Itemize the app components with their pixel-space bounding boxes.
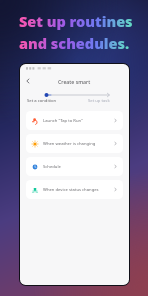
staticText: Launch "Tap to Run" (43, 118, 83, 124)
button[interactable]: Launch "Tap to Run" (26, 111, 123, 130)
staticText: Set a condition (27, 98, 57, 104)
staticText: and schedules. (19, 33, 130, 53)
staticText: Set up task (88, 98, 110, 104)
staticText: Schedule (43, 164, 61, 170)
staticText: When weather is changing (43, 141, 96, 147)
staticText: Create smart (58, 78, 91, 85)
button[interactable]: When device status changes (26, 180, 123, 199)
staticText: Set up routines (19, 11, 133, 31)
button[interactable]: When weather is changing (26, 134, 123, 153)
button[interactable]: Back (21, 74, 35, 88)
staticText: When device status changes (43, 187, 99, 193)
button[interactable]: Schedule (26, 157, 123, 176)
